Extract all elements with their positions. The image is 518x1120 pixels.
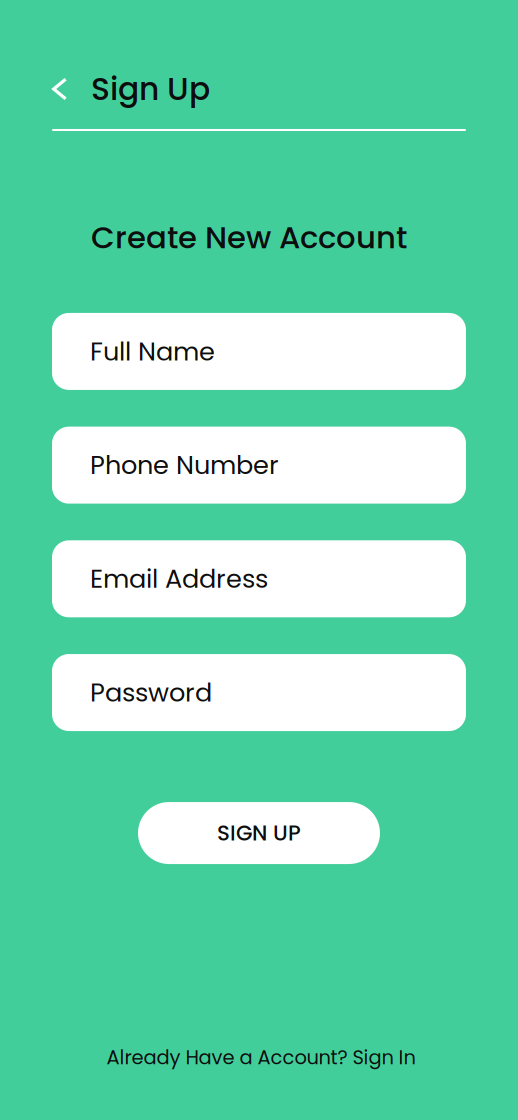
staticText: Email Address xyxy=(90,561,268,597)
button[interactable]: Password xyxy=(52,654,466,731)
staticText: Already Have a Account? Sign In xyxy=(106,1044,415,1071)
staticText: Full Name xyxy=(90,333,215,369)
button[interactable]: Already Have a Account? Sign In xyxy=(102,1044,415,1071)
staticText: Sign Up xyxy=(91,67,210,111)
button[interactable]: SIGN UP xyxy=(138,802,380,864)
button[interactable]: Full Name xyxy=(52,313,466,390)
staticText: Password xyxy=(90,675,212,710)
staticText: Phone Number xyxy=(90,447,279,483)
staticText: SIGN UP xyxy=(217,818,301,848)
button[interactable]: Phone Number xyxy=(52,427,466,504)
button[interactable]: Back xyxy=(50,73,78,104)
button[interactable]: Email Address xyxy=(52,540,466,617)
staticText: Create New Account xyxy=(91,216,407,259)
